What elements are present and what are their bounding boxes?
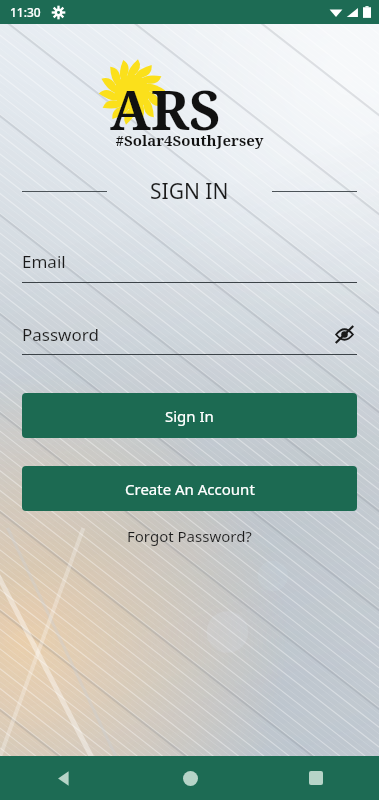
staticText: SIGN IN bbox=[150, 177, 229, 206]
staticText: #Solar4SouthJersey bbox=[107, 130, 272, 150]
staticText: ARS bbox=[110, 72, 221, 146]
staticText: 11:30 bbox=[10, 4, 41, 20]
staticText: Password bbox=[22, 323, 331, 346]
button[interactable]: Email bbox=[22, 250, 357, 283]
staticText: Sign In bbox=[165, 406, 214, 426]
button[interactable]: Sign In bbox=[22, 393, 357, 438]
button[interactable]: Create An Account bbox=[22, 466, 357, 511]
button[interactable]: Recent apps bbox=[253, 756, 379, 800]
button[interactable]: Home bbox=[127, 756, 253, 800]
button[interactable]: Password bbox=[22, 321, 357, 355]
button[interactable]: Back bbox=[0, 756, 127, 800]
staticText: Email bbox=[22, 250, 66, 273]
staticText: Create An Account bbox=[125, 479, 255, 499]
button[interactable]: Forgot Password? bbox=[115, 523, 264, 549]
staticText: Forgot Password? bbox=[127, 526, 252, 546]
button[interactable]: Show password bbox=[331, 321, 357, 347]
